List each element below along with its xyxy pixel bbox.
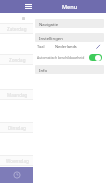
staticText: Instellingen <box>39 35 63 41</box>
staticText: Woensdag <box>6 158 29 164</box>
button[interactable]: Taal <box>33 42 106 51</box>
button[interactable]: Info <box>35 65 104 74</box>
button[interactable]: Automatisch beschikbaarheid <box>33 52 106 62</box>
staticText: Taal <box>37 44 45 49</box>
button[interactable]: Instellingen <box>35 33 104 42</box>
button[interactable]: Time tracking <box>0 167 34 183</box>
staticText: Zaterdag <box>7 26 27 32</box>
button[interactable]: Edit language <box>95 43 102 50</box>
staticText: Nederlands <box>55 44 77 49</box>
staticText: Menu <box>62 3 78 10</box>
button[interactable]: Automatic availability toggle, on <box>89 54 102 61</box>
button[interactable]: Open navigation menu <box>24 2 33 11</box>
button[interactable]: Navigatie <box>35 19 104 28</box>
staticText: Maandag <box>7 92 28 98</box>
staticText: Zondag <box>9 57 26 63</box>
staticText: Navigatie <box>39 21 59 27</box>
staticText: Automatisch beschikbaarheid <box>37 55 85 60</box>
staticText: Info <box>39 67 48 73</box>
staticText: Dinsdag <box>8 125 26 131</box>
